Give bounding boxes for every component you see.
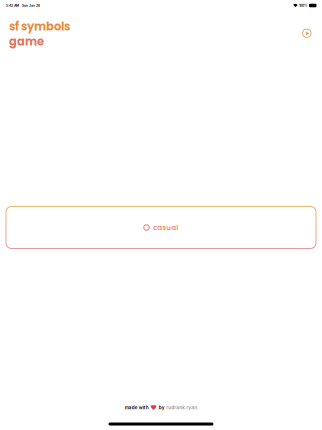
staticText: by (159, 405, 165, 410)
staticText: rudrank ryan (166, 405, 197, 410)
button[interactable]: How to play (300, 26, 314, 40)
button[interactable]: casual (5, 206, 316, 249)
staticText: 5:42 AM Sun Jan 28 (6, 3, 40, 7)
staticText: made with (125, 405, 149, 410)
staticText: game (9, 33, 44, 50)
staticText: casual (153, 223, 178, 232)
staticText: sf symbols (9, 18, 70, 35)
staticText: 100% (299, 3, 307, 7)
staticText: ♥ (150, 404, 157, 411)
